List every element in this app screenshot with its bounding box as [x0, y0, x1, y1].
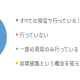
staticText: 初期経路という概念を知らな: [20, 60, 80, 66]
staticText: すべての現場で行っている (2: [20, 17, 80, 23]
staticText: 一部の現場のみ行っている: [20, 45, 79, 52]
staticText: 行っていない: [20, 31, 49, 38]
